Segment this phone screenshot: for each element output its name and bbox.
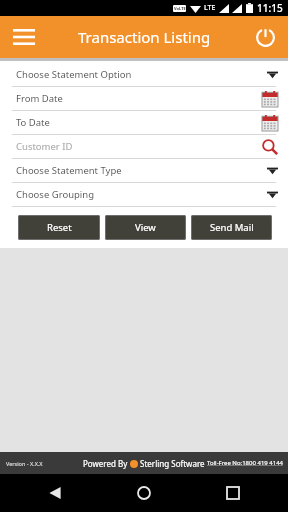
staticText: Transaction Listing	[78, 27, 211, 47]
staticText: LTE	[204, 3, 216, 13]
button[interactable]: Choose Statement Option	[0, 63, 288, 87]
button[interactable]: To Date	[0, 111, 288, 135]
button[interactable]: Send Mail	[191, 215, 272, 240]
staticText: To Date	[16, 116, 50, 129]
staticText: Sterling Software	[138, 458, 205, 469]
button[interactable]: Power / Logout	[250, 22, 280, 52]
button[interactable]: Choose Grouping	[0, 183, 288, 207]
staticText: Choose Statement Type	[16, 164, 122, 177]
button[interactable]: Home	[129, 478, 159, 508]
button[interactable]: Reset	[18, 215, 100, 240]
staticText: Powered By	[83, 458, 130, 469]
staticText: 11:15	[257, 1, 283, 15]
button[interactable]: View	[105, 215, 186, 240]
staticText: Send Mail	[210, 221, 254, 234]
staticText: VoLTE	[174, 6, 186, 11]
button[interactable]: Choose Statement Type	[0, 159, 288, 183]
staticText: From Date	[16, 92, 63, 105]
button[interactable]: Recent apps	[218, 478, 248, 508]
button[interactable]: Customer ID	[0, 135, 288, 159]
staticText: Customer ID	[16, 140, 73, 153]
button[interactable]: Back	[40, 478, 70, 508]
staticText: Choose Grouping	[16, 188, 95, 201]
staticText: View	[135, 221, 156, 234]
staticText: Version - X.X.X	[6, 460, 43, 467]
staticText: Choose Statement Option	[16, 68, 132, 81]
staticText: Reset	[47, 221, 72, 234]
button[interactable]: Menu	[8, 21, 40, 53]
button[interactable]: From Date	[0, 87, 288, 111]
button[interactable]: Toll-Free No:1800 419 4144	[207, 459, 284, 467]
